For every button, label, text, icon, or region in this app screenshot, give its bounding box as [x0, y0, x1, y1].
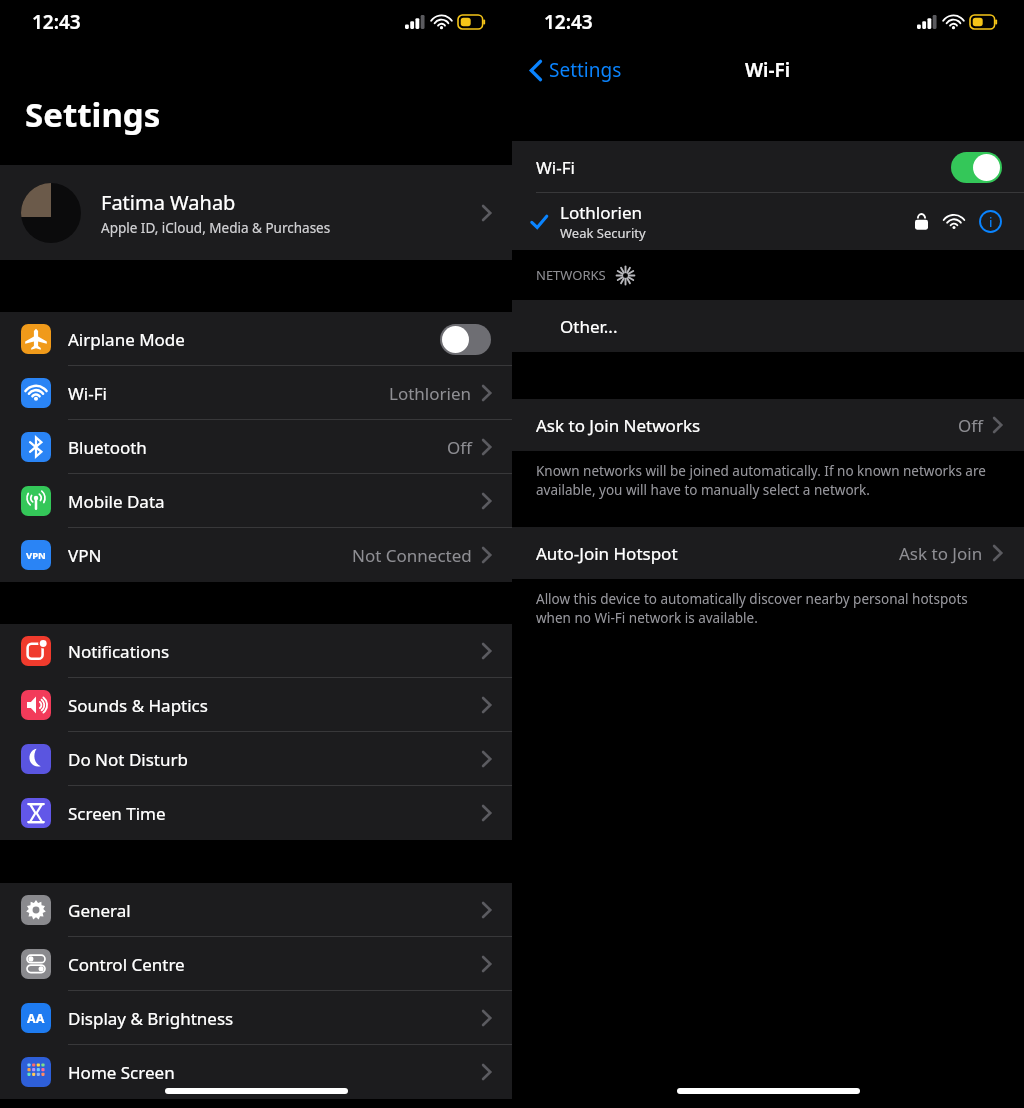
- staticText: Mobile Data: [68, 490, 482, 513]
- staticText: Wi-Fi: [68, 382, 389, 405]
- button[interactable]: VPN: [0, 528, 512, 582]
- staticText: Fatima Wahab: [101, 189, 236, 216]
- staticText: Display & Brightness: [68, 1007, 482, 1030]
- button[interactable]: Home Screen: [0, 1045, 512, 1099]
- staticText: VPN: [68, 544, 352, 567]
- staticText: NETWORKS: [536, 266, 606, 284]
- staticText: 12:43: [32, 9, 81, 35]
- button[interactable]: Network information: [979, 210, 1002, 233]
- button[interactable]: Wi-Fi: [512, 141, 1024, 193]
- staticText: Off: [447, 436, 472, 459]
- staticText: Lothlorien: [389, 382, 472, 405]
- staticText: Do Not Disturb: [68, 748, 482, 771]
- button[interactable]: AA: [0, 991, 512, 1045]
- staticText: Airplane Mode: [68, 328, 440, 351]
- staticText: Sounds & Haptics: [68, 694, 482, 717]
- staticText: Wi-Fi: [745, 57, 791, 83]
- staticText: 12:43: [544, 9, 593, 35]
- staticText: VPN: [26, 549, 46, 562]
- button[interactable]: Mobile Data: [0, 474, 512, 528]
- staticText: Bluetooth: [68, 436, 447, 459]
- button[interactable]: Auto-Join Hotspot: [512, 527, 1024, 579]
- button[interactable]: Bluetooth: [0, 420, 512, 474]
- staticText: Off: [958, 414, 983, 437]
- staticText: Not Connected: [352, 544, 472, 567]
- staticText: Notifications: [68, 640, 482, 663]
- staticText: Weak Security: [560, 224, 646, 242]
- button[interactable]: Airplane Mode: [0, 312, 512, 366]
- staticText: Auto-Join Hotspot: [536, 542, 899, 565]
- staticText: Known networks will be joined automatica…: [536, 462, 1006, 498]
- button[interactable]: Other...: [512, 300, 1024, 352]
- staticText: AA: [27, 1010, 45, 1027]
- button[interactable]: Sounds & Haptics: [0, 678, 512, 732]
- staticText: General: [68, 899, 482, 922]
- staticText: Settings: [549, 57, 622, 83]
- button[interactable]: Ask to Join Networks: [512, 399, 1024, 451]
- button[interactable]: Wi-Fi: [0, 366, 512, 420]
- staticText: Settings: [25, 92, 161, 137]
- staticText: Other...: [560, 315, 1002, 338]
- staticText: Apple ID, iCloud, Media & Purchases: [101, 219, 331, 237]
- button[interactable]: General: [0, 883, 512, 937]
- staticText: Home Screen: [68, 1061, 482, 1084]
- staticText: Ask to Join: [899, 542, 983, 565]
- staticText: Lothlorien: [560, 201, 643, 224]
- button[interactable]: Control Centre: [0, 937, 512, 991]
- staticText: Control Centre: [68, 953, 482, 976]
- staticText: i: [989, 213, 993, 231]
- staticText: Allow this device to automatically disco…: [536, 590, 1006, 626]
- button[interactable]: Screen Time: [0, 786, 512, 840]
- staticText: Wi-Fi: [536, 156, 951, 179]
- staticText: Screen Time: [68, 802, 482, 825]
- button[interactable]: Fatima Wahab: [0, 165, 512, 260]
- button[interactable]: Notifications: [0, 624, 512, 678]
- button[interactable]: Do Not Disturb: [0, 732, 512, 786]
- staticText: Ask to Join Networks: [536, 414, 958, 437]
- button[interactable]: Settings: [530, 57, 622, 83]
- button[interactable]: Lothlorien: [512, 193, 1024, 250]
